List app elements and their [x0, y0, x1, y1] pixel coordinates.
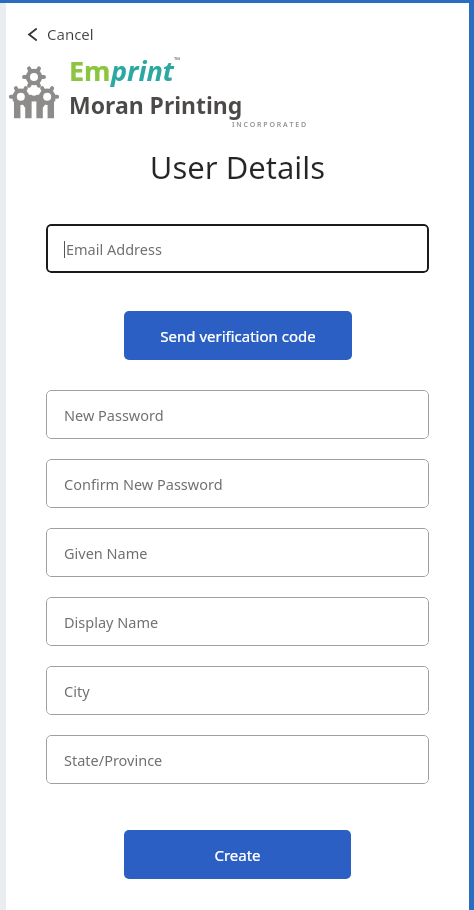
button[interactable]: State/Province: [46, 735, 429, 784]
button[interactable]: City: [46, 666, 429, 715]
staticText: User Details: [6, 146, 469, 188]
staticText: Send verification code: [160, 326, 316, 346]
staticText: Email Address: [66, 239, 162, 259]
button[interactable]: New Password: [46, 390, 429, 439]
staticText: Display Name: [64, 612, 159, 632]
button[interactable]: Email Address: [46, 224, 429, 273]
button[interactable]: Cancel: [20, 20, 100, 48]
staticText: ™: [174, 54, 181, 65]
staticText: Given Name: [64, 543, 148, 563]
staticText: City: [64, 681, 90, 701]
staticText: print: [111, 52, 174, 89]
button[interactable]: Send verification code: [124, 311, 352, 360]
staticText: New Password: [64, 405, 164, 425]
button[interactable]: Confirm New Password: [46, 459, 429, 508]
staticText: Confirm New Password: [64, 474, 223, 494]
staticText: Cancel: [47, 24, 94, 44]
button[interactable]: Given Name: [46, 528, 429, 577]
button[interactable]: Display Name: [46, 597, 429, 646]
button[interactable]: Create: [124, 830, 351, 879]
staticText: State/Province: [64, 750, 163, 770]
staticText: Moran Printing: [69, 89, 243, 120]
staticText: Create: [214, 845, 261, 865]
staticText: Em: [69, 52, 111, 89]
staticText: I N C O R P O R A T E D: [69, 120, 469, 130]
